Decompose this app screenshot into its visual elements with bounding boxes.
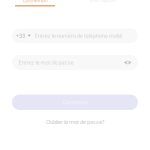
staticText: Oublier le mot de passe? [46,118,104,126]
button[interactable]: Afficher le mot de passe [124,55,138,70]
button[interactable]: Inscription [83,0,123,3]
staticText: +33 [16,32,25,39]
staticText: Connexion [62,99,87,106]
button[interactable]: +33 [12,28,35,43]
staticText: Entrez le mot de passe [18,59,73,66]
staticText: Inscription [90,0,116,3]
staticText: Connexion [22,0,47,4]
staticText: Entrez le numéro de téléphone mobil [35,32,122,39]
button[interactable]: Connexion [15,0,55,6]
button[interactable]: Oublier le mot de passe? [12,118,138,126]
button[interactable]: Connexion [12,94,138,110]
